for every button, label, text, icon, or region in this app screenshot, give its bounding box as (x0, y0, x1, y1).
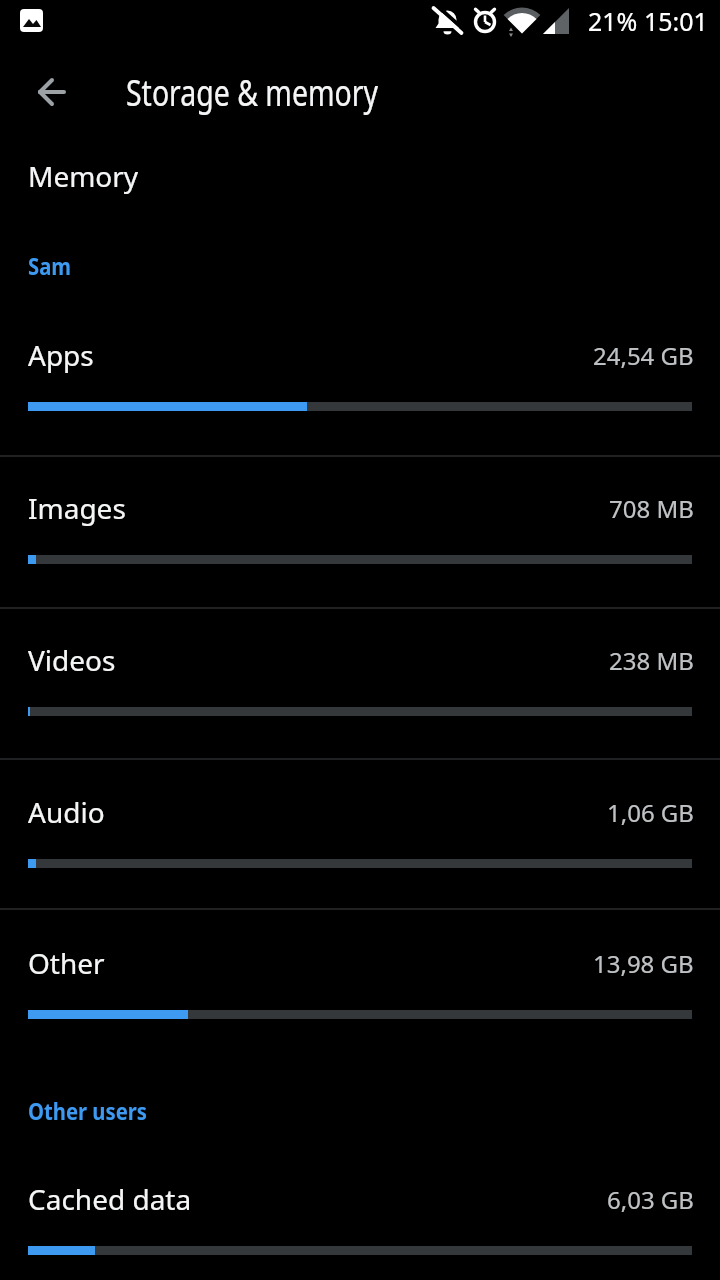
staticText: Storage & memory (126, 68, 379, 117)
staticText: 24,54 GB (593, 339, 694, 372)
staticText: 1,06 GB (607, 796, 694, 829)
staticText: Apps (28, 336, 94, 374)
staticText: 708 MB (609, 492, 694, 525)
staticText: Memory (28, 157, 139, 195)
staticText: Other users (28, 1095, 148, 1126)
button[interactable]: Images (0, 456, 720, 606)
button[interactable] (24, 66, 80, 118)
button[interactable]: Cached data (0, 1147, 720, 1280)
staticText: Audio (28, 793, 105, 831)
button[interactable]: Apps (0, 303, 720, 453)
staticText: 13,98 GB (593, 947, 694, 980)
button[interactable]: Videos (0, 608, 720, 758)
staticText: Sam (28, 250, 71, 281)
button[interactable]: Other (0, 911, 720, 1061)
staticText: Videos (28, 641, 116, 679)
staticText: 21% 15:01 (588, 4, 708, 38)
button[interactable]: Audio (0, 760, 720, 910)
staticText: Images (28, 489, 126, 527)
staticText: 238 MB (609, 644, 694, 677)
staticText: Cached data (28, 1180, 192, 1218)
staticText: 6,03 GB (607, 1183, 694, 1216)
staticText: Other (28, 944, 105, 982)
